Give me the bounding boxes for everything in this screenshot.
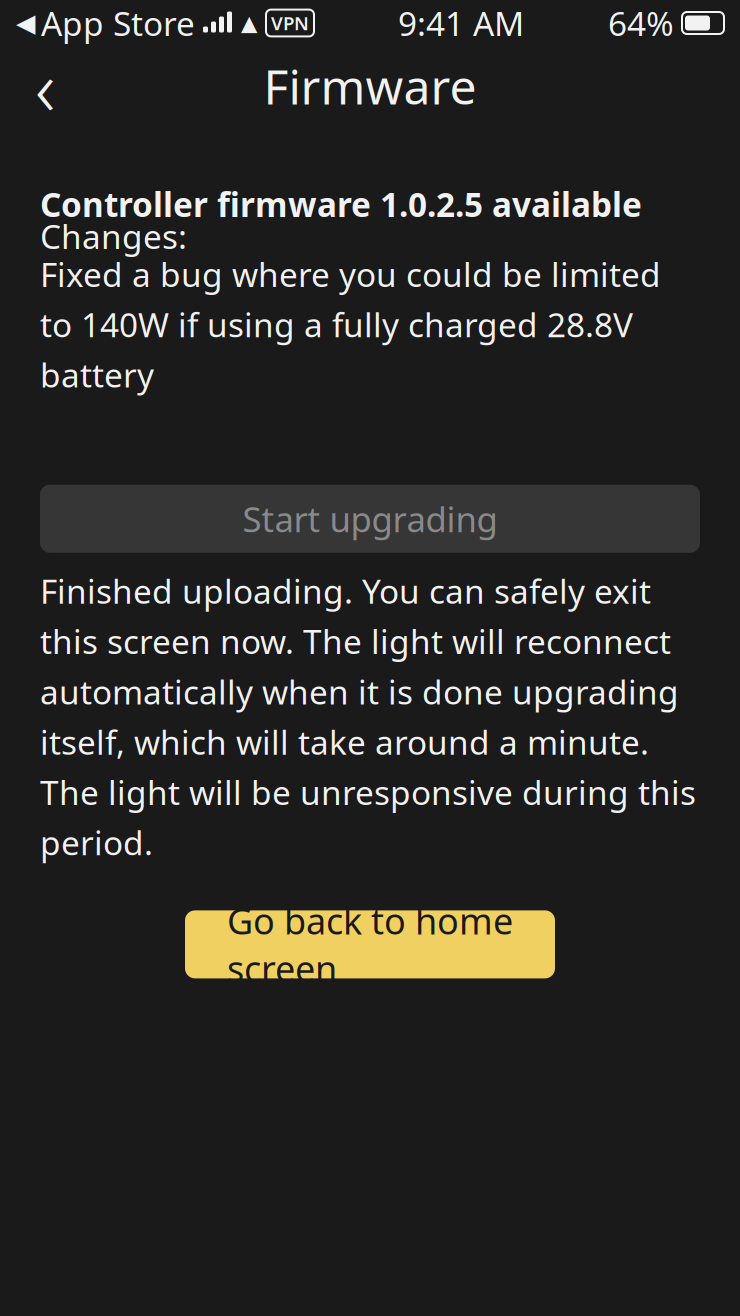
staticText: ‹ xyxy=(35,35,55,137)
staticText: Start upgrading xyxy=(242,496,497,542)
staticText: ◀ xyxy=(16,9,35,37)
staticText: Finished uploading. You can safely exit … xyxy=(40,569,696,864)
staticText: ▲ xyxy=(241,11,257,35)
staticText: Changes: xyxy=(40,214,187,258)
staticText: VPN xyxy=(271,11,309,35)
staticText: Firmware xyxy=(263,54,476,118)
staticText: App Store xyxy=(41,1,195,45)
staticText: Fixed a bug where you could be limited t… xyxy=(40,252,661,397)
staticText: 9:41 AM xyxy=(398,1,524,45)
staticText: Go back to home screen xyxy=(227,897,513,992)
button[interactable]: Go back to home screen xyxy=(185,910,555,978)
button[interactable]: Back xyxy=(14,55,76,117)
staticText: Controller firmware 1.0.2.5 available xyxy=(40,182,642,226)
button[interactable]: Start upgrading xyxy=(40,485,700,553)
staticText: 64% xyxy=(608,1,674,45)
